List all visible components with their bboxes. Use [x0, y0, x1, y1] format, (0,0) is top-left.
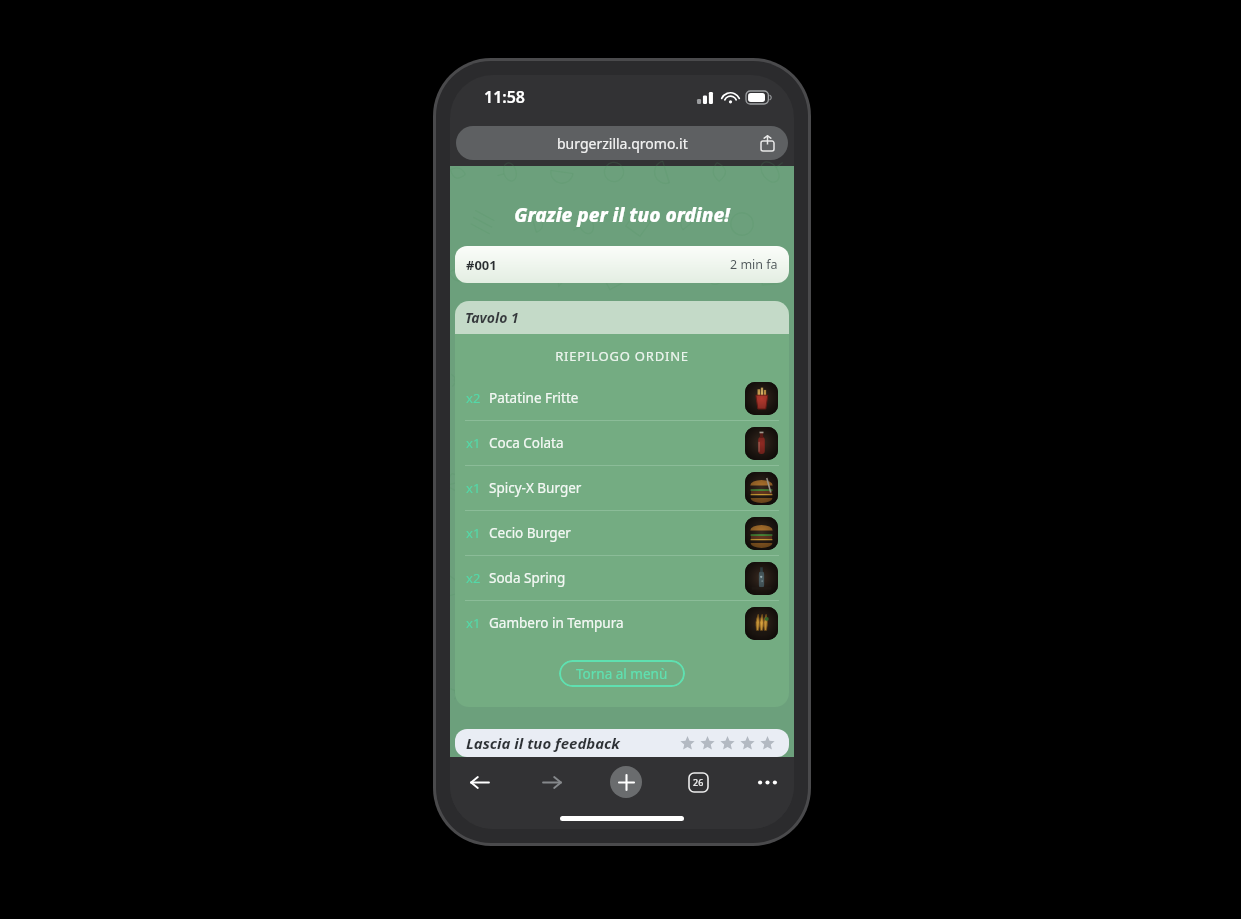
staticText: x1 — [466, 434, 481, 452]
staticText: Soda Spring — [489, 569, 566, 587]
staticText: Coca Colata — [489, 434, 564, 452]
staticText: RIEPILOGO ORDINE — [455, 347, 789, 365]
staticText: Gambero in Tempura — [489, 614, 624, 632]
button[interactable]: x2 — [455, 376, 789, 420]
staticText: Lascia il tuo feedback — [466, 733, 620, 753]
button[interactable]: Rate 2 stars — [697, 733, 717, 753]
button[interactable]: Rate 3 stars — [717, 733, 737, 753]
button[interactable]: New tab — [610, 766, 642, 798]
button[interactable]: More options — [754, 769, 780, 795]
staticText: x1 — [466, 479, 481, 497]
button[interactable]: Torna al menù — [559, 660, 685, 687]
button[interactable]: burgerzilla.qromo.it — [456, 126, 788, 160]
staticText: 2 min fa — [730, 256, 778, 273]
staticText: Patatine Fritte — [489, 389, 579, 407]
button[interactable]: Rate 5 stars — [757, 733, 777, 753]
staticText: #001 — [466, 256, 497, 274]
button[interactable]: x1 — [455, 511, 789, 555]
staticText: Spicy-X Burger — [489, 479, 582, 497]
staticText: Tavolo 1 — [465, 308, 519, 327]
button[interactable]: #001 — [455, 246, 789, 283]
staticText: 11:58 — [484, 86, 526, 108]
button[interactable]: Back — [464, 767, 494, 797]
button[interactable]: Lascia il tuo feedback — [455, 729, 789, 757]
button[interactable]: x1 — [455, 601, 789, 645]
button[interactable]: x2 — [455, 556, 789, 600]
button[interactable]: Forward — [537, 767, 567, 797]
staticText: x2 — [466, 389, 481, 407]
button[interactable]: x1 — [455, 466, 789, 510]
staticText: burgerzilla.qromo.it — [557, 134, 688, 153]
staticText: Grazie per il tuo ordine! — [450, 202, 794, 228]
staticText: 26 — [693, 776, 704, 788]
button[interactable]: Rate 1 stars — [677, 733, 697, 753]
button[interactable]: Tabs, 26 open — [685, 769, 711, 795]
button[interactable]: x1 — [455, 421, 789, 465]
staticText: Torna al menù — [576, 665, 668, 683]
staticText: x2 — [466, 569, 481, 587]
staticText: Cecio Burger — [489, 524, 571, 542]
staticText: x1 — [466, 614, 481, 632]
staticText: x1 — [466, 524, 481, 542]
button[interactable]: Share — [756, 132, 778, 154]
button[interactable]: Rate 4 stars — [737, 733, 757, 753]
